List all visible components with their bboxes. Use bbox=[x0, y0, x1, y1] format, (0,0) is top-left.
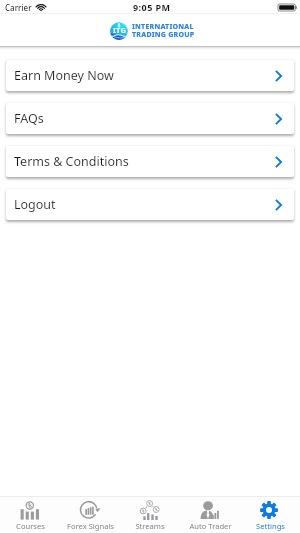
staticText: Forex Signals bbox=[67, 521, 114, 531]
button[interactable]: Forex Signals bbox=[60, 497, 120, 533]
button[interactable]: Earn Money Now bbox=[6, 60, 294, 91]
staticText: INTERNATIONAL TRADING GROUP bbox=[132, 21, 195, 39]
staticText: Earn Money Now bbox=[14, 67, 114, 84]
staticText: Streams bbox=[135, 521, 165, 531]
button[interactable]: Courses bbox=[0, 497, 60, 533]
staticText: ITG bbox=[113, 25, 126, 35]
staticText: Courses bbox=[16, 521, 45, 531]
staticText: Logout bbox=[14, 196, 56, 213]
button[interactable]: Terms & Conditions bbox=[6, 146, 294, 177]
staticText: Terms & Conditions bbox=[14, 153, 129, 170]
staticText: Auto Trader bbox=[189, 521, 232, 531]
staticText: Carrier bbox=[5, 2, 32, 13]
staticText: Settings bbox=[256, 521, 285, 531]
staticText: FAQs bbox=[14, 110, 44, 127]
staticText: 9:05 PM bbox=[133, 1, 171, 13]
button[interactable]: FAQs bbox=[6, 103, 294, 134]
button[interactable]: Settings bbox=[240, 497, 300, 533]
button[interactable]: Auto Trader bbox=[180, 497, 240, 533]
button[interactable]: Logout bbox=[6, 189, 294, 220]
button[interactable]: Streams bbox=[120, 497, 180, 533]
